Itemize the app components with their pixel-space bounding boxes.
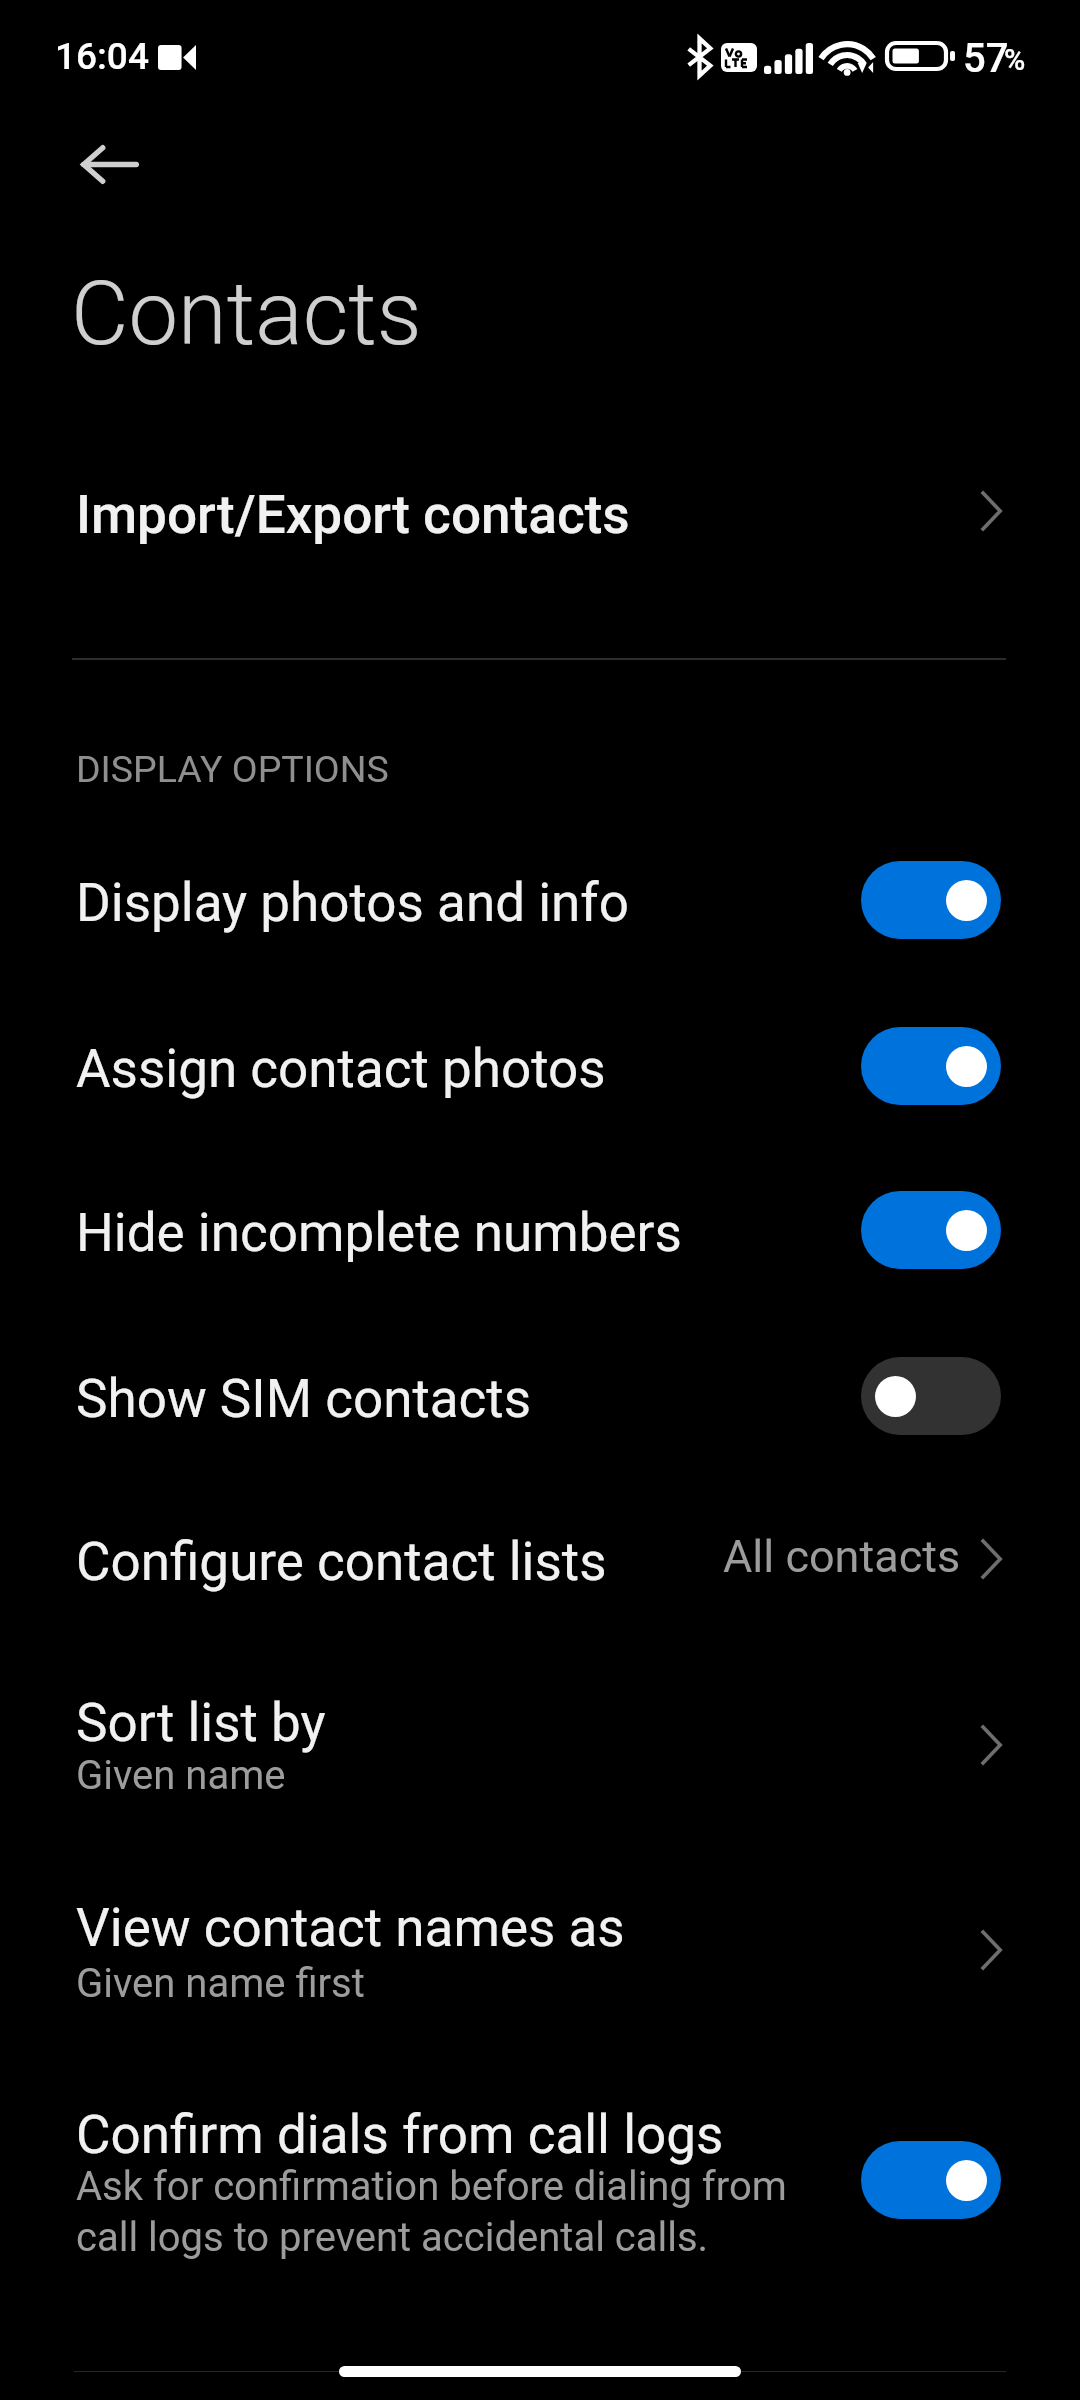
button[interactable]: Switch on xyxy=(861,1027,1001,1105)
staticText: Given name xyxy=(76,1752,286,1799)
button[interactable]: Switch on xyxy=(861,2141,1001,2219)
button[interactable]: Display photos and info xyxy=(0,820,1080,985)
staticText: Given name first xyxy=(76,1960,365,2007)
staticText: View contact names as xyxy=(76,1897,625,1959)
button[interactable]: Switch on xyxy=(861,1191,1001,1269)
staticText: Show SIM contacts xyxy=(76,1368,532,1430)
staticText: Import/Export contacts xyxy=(76,484,630,546)
staticText: Hide incomplete numbers xyxy=(76,1202,682,1264)
button[interactable]: Confirm dials from call logs xyxy=(0,2062,1080,2277)
staticText: % xyxy=(1004,43,1026,77)
button[interactable]: Import/Export contacts xyxy=(0,452,1080,572)
staticText: Assign contact photos xyxy=(76,1038,606,1100)
staticText: Display photos and info xyxy=(76,872,630,934)
button[interactable]: Show SIM contacts xyxy=(0,1315,1080,1480)
button[interactable]: View contact names as xyxy=(0,1855,1080,2040)
button[interactable]: Back xyxy=(65,119,155,209)
staticText: Confirm dials from call logs xyxy=(76,2104,724,2166)
staticText: DISPLAY OPTIONS xyxy=(76,747,389,791)
button[interactable]: Hide incomplete numbers xyxy=(0,1150,1080,1315)
staticText: All contacts xyxy=(723,1530,961,1583)
staticText: 57 xyxy=(963,35,1009,82)
button[interactable]: Assign contact photos xyxy=(0,986,1080,1151)
staticText: Sort list by xyxy=(76,1692,326,1754)
button[interactable]: Switch on xyxy=(861,861,1001,939)
button[interactable]: Configure contact lists xyxy=(0,1480,1080,1638)
staticText: Ask for confirmation before dialing from… xyxy=(76,2163,787,2261)
staticText: Contacts xyxy=(71,262,422,366)
staticText: Configure contact lists xyxy=(76,1531,607,1593)
button[interactable]: Switch off xyxy=(861,1357,1001,1435)
staticText: 16:04 xyxy=(55,35,149,78)
button[interactable]: Sort list by xyxy=(0,1650,1080,1835)
